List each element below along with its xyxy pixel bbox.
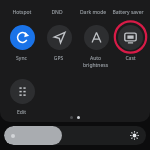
button[interactable]: Battery saver bbox=[111, 9, 145, 16]
staticText: Sync bbox=[3, 55, 40, 62]
button[interactable]: Edit bbox=[3, 74, 40, 116]
staticText: Battery saver bbox=[111, 9, 145, 16]
button[interactable]: DND bbox=[40, 9, 74, 16]
staticText: Edit bbox=[3, 109, 40, 116]
staticText: Hotspot bbox=[5, 9, 39, 16]
button[interactable]: Hotspot bbox=[5, 9, 39, 16]
staticText: GPS bbox=[40, 55, 77, 62]
button[interactable]: Brightness bbox=[4, 126, 146, 145]
staticText: Cast bbox=[114, 55, 147, 62]
button[interactable]: Cast bbox=[114, 20, 147, 62]
staticText: Dark mode bbox=[76, 9, 110, 16]
staticText: Auto brightness bbox=[77, 55, 114, 69]
button[interactable]: Auto brightness bbox=[77, 20, 114, 69]
button[interactable]: GPS bbox=[40, 20, 77, 62]
button[interactable]: Sync bbox=[3, 20, 40, 62]
button[interactable]: Dark mode bbox=[76, 9, 110, 16]
staticText: DND bbox=[40, 9, 74, 16]
